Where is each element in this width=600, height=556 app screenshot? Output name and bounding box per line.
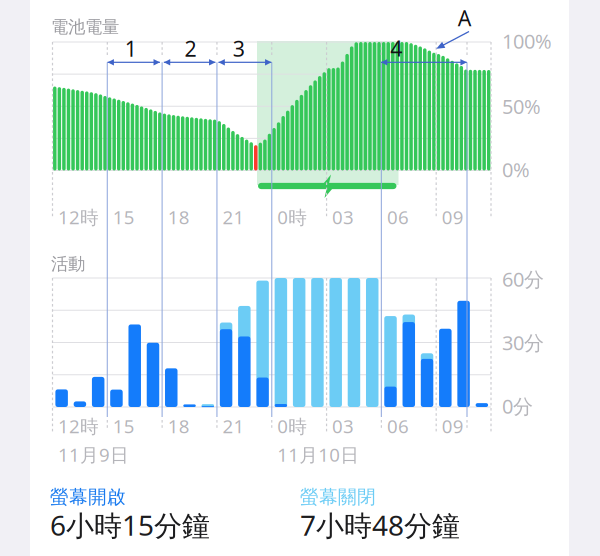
staticText: 18	[168, 414, 190, 438]
staticText: A	[458, 4, 472, 32]
staticText: 螢幕關閉	[300, 485, 376, 508]
staticText: 06	[387, 414, 409, 438]
staticText: 電池電量	[51, 16, 119, 38]
staticText: 活動	[51, 253, 85, 275]
staticText: 0時	[277, 414, 307, 438]
staticText: 12時	[58, 414, 99, 438]
staticText: 11月9日	[58, 442, 129, 467]
staticText: 09	[442, 414, 464, 438]
staticText: 60分	[502, 266, 544, 292]
button[interactable]: 螢幕開啟	[0, 0, 600, 556]
staticText: 09	[442, 205, 464, 229]
staticText: 11月10日	[277, 442, 359, 467]
staticText: 12時	[58, 205, 99, 229]
staticText: 06	[387, 205, 409, 229]
staticText: 03	[332, 205, 354, 229]
staticText: 0%	[502, 156, 530, 183]
staticText: 15	[113, 205, 135, 229]
staticText: 螢幕開啟	[50, 485, 126, 508]
button[interactable]: 螢幕關閉	[0, 0, 600, 556]
staticText: 30分	[502, 329, 544, 356]
staticText: 0時	[277, 205, 307, 229]
staticText: 6小時15分鐘	[50, 506, 210, 544]
staticText: 21	[222, 205, 244, 229]
staticText: 0分	[502, 393, 533, 419]
staticText: 03	[332, 414, 354, 438]
staticText: 18	[168, 205, 190, 229]
staticText: 100%	[502, 28, 552, 54]
staticText: 7小時48分鐘	[300, 506, 460, 544]
staticText: 1	[125, 34, 137, 63]
staticText: 2	[184, 34, 196, 63]
staticText: 21	[222, 414, 244, 438]
staticText: 15	[113, 414, 135, 438]
staticText: 4	[390, 34, 402, 62]
staticText: 3	[233, 34, 245, 63]
staticText: 50%	[502, 93, 541, 120]
